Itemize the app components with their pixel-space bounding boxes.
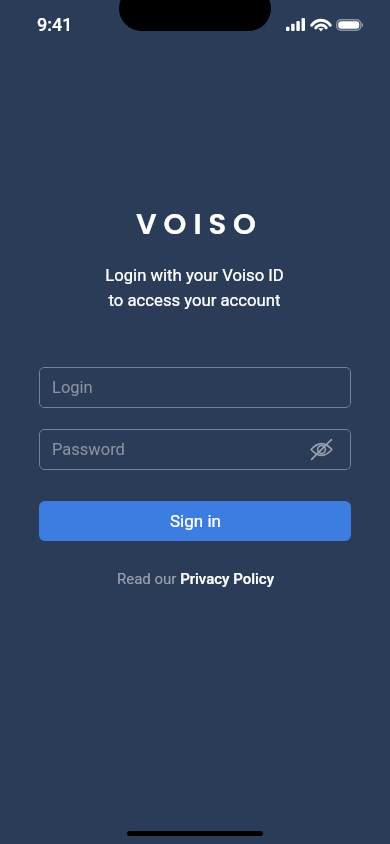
button[interactable]: Sign in bbox=[39, 501, 351, 541]
staticText: 9:41 bbox=[37, 14, 73, 35]
staticText: Password bbox=[52, 440, 125, 459]
staticText: Login with your Voiso ID to access your … bbox=[105, 266, 284, 310]
staticText: Sign in bbox=[170, 511, 221, 531]
button[interactable]: Password bbox=[39, 429, 351, 470]
staticText: VOISO bbox=[136, 204, 263, 245]
button[interactable]: Login bbox=[39, 367, 351, 408]
button[interactable]: Read our Privacy Policy bbox=[111, 567, 280, 591]
staticText: Login bbox=[52, 378, 93, 397]
button[interactable]: Show password bbox=[307, 436, 335, 464]
